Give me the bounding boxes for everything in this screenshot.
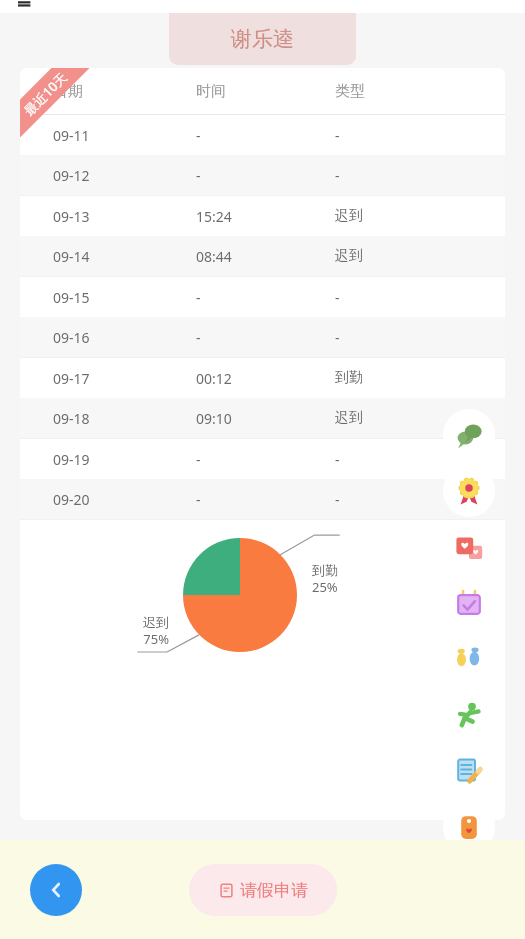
button[interactable]: Awards [443,465,495,517]
button[interactable]: Likes [443,521,495,573]
button[interactable]: Messages [443,409,495,461]
staticText: - [196,450,201,469]
button[interactable]: 09-15 [20,277,505,317]
staticText: - [196,288,201,307]
button[interactable]: 请假申请 [189,864,337,916]
button[interactable]: Back [30,864,82,916]
staticText: 09-17 [53,369,90,388]
staticText: 迟到 [335,207,363,225]
staticText: 09-19 [53,450,90,469]
staticText: - [335,288,340,307]
staticText: 08:44 [196,247,232,266]
staticText: - [196,490,201,509]
staticText: 09:10 [196,409,232,428]
button[interactable]: 09-20 [20,479,505,519]
staticText: 请假申请 [240,880,308,901]
button[interactable]: Calendar [443,577,495,629]
staticText: 09-14 [53,247,90,266]
staticText: - [335,490,340,509]
button[interactable]: Footprints [443,633,495,685]
staticText: 00:12 [196,369,232,388]
staticText: - [335,166,340,185]
staticText: 09-15 [53,288,90,307]
staticText: 09-18 [53,409,90,428]
button[interactable]: 09-13 [20,196,505,236]
staticText: - [335,126,340,145]
staticText: 15:24 [196,207,232,226]
button[interactable]: 09-19 [20,439,505,479]
staticText: - [196,126,201,145]
staticText: - [335,328,340,347]
button[interactable]: 09-12 [20,155,505,195]
button[interactable]: 谢乐逵 [169,13,356,65]
button[interactable]: Notes [443,745,495,797]
staticText: 谢乐逵 [231,26,294,52]
staticText: - [196,166,201,185]
staticText: 09-13 [53,207,90,226]
button[interactable]: 09-11 [20,115,505,155]
staticText: - [335,450,340,469]
staticText: 到勤 25% [312,562,338,595]
staticText: 迟到 75% [127,614,169,647]
button[interactable]: Activity [443,689,495,741]
button[interactable]: Tag [443,801,495,853]
button[interactable]: 09-18 [20,398,505,438]
staticText: 到勤 [335,369,363,387]
staticText: 最近10天 [20,68,71,119]
button[interactable]: 09-16 [20,317,505,357]
staticText: 迟到 [335,409,363,427]
staticText: 09-16 [53,328,90,347]
staticText: - [196,328,201,347]
staticText: 09-11 [53,126,90,145]
staticText: 类型 [335,82,365,101]
button[interactable]: 09-14 [20,236,505,276]
staticText: 迟到 [335,247,363,265]
staticText: 日期 [53,82,83,101]
staticText: 09-12 [53,166,90,185]
staticText: 09-20 [53,490,90,509]
button[interactable]: 09-17 [20,358,505,398]
staticText: 时间 [196,82,226,101]
